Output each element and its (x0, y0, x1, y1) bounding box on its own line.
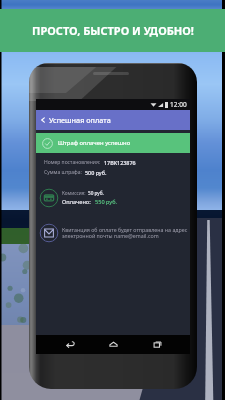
staticText: Успешная оплата (49, 115, 111, 125)
staticText: 50 руб. (88, 190, 104, 196)
staticText: 550 руб. (95, 198, 117, 206)
button[interactable]: Комиссия: (36, 188, 190, 208)
staticText: Штраф оплачен успешно (58, 139, 131, 147)
button[interactable]: Home (103, 335, 123, 354)
button[interactable]: Recent apps (147, 335, 167, 354)
staticText: Оплачено: (62, 198, 91, 206)
staticText: Комиссия: (62, 190, 86, 196)
staticText: Номер постановления: (44, 159, 101, 166)
button[interactable]: Квитанция об оплате будет отправлена на … (36, 223, 190, 243)
staticText: Сумма штрафа: (44, 169, 82, 176)
staticText: ПРОСТО, БЫСТРО И УДОБНО! (32, 23, 194, 38)
other: Back (40, 117, 46, 123)
staticText: 500 руб. (85, 169, 107, 176)
button[interactable]: Back (60, 335, 80, 354)
staticText: 17BK123876 (104, 159, 136, 166)
staticText: 12:00 (170, 100, 187, 109)
staticText: Квитанция об оплате будет отправлена на … (62, 226, 188, 240)
button[interactable]: Back (36, 110, 190, 130)
